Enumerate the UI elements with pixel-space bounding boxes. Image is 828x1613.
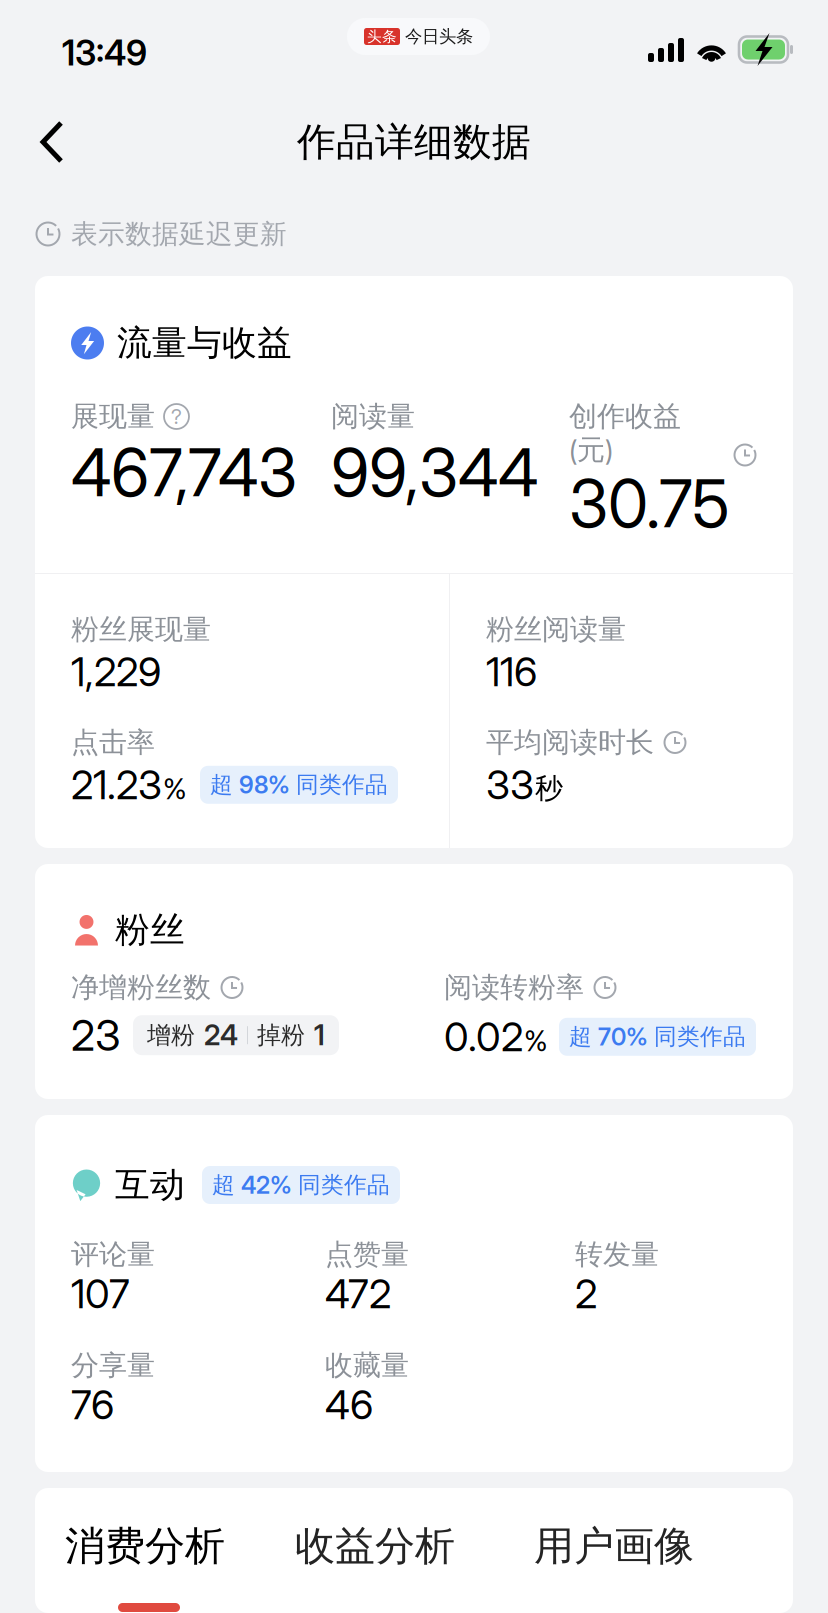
staticText: 70%: [598, 1022, 648, 1051]
staticText: 收益分析: [295, 1521, 455, 1571]
staticText: 24: [204, 1018, 238, 1052]
staticText: 掉粉: [257, 1020, 305, 1050]
staticText: ?: [171, 404, 182, 429]
staticText: 46: [325, 1381, 373, 1429]
staticText: 用户画像: [534, 1521, 694, 1571]
staticText: 30.75: [569, 464, 730, 543]
staticText: 互动: [115, 1163, 185, 1207]
staticText: 净增粉丝数: [71, 970, 211, 1005]
staticText: 秒: [535, 771, 563, 806]
staticText: 33: [486, 761, 534, 809]
staticText: 超: [569, 1022, 592, 1051]
button[interactable]: 消费分析: [65, 1521, 295, 1612]
staticText: %: [524, 1024, 548, 1058]
staticText: 流量与收益: [117, 321, 292, 365]
staticText: 同类作品: [654, 1022, 746, 1051]
staticText: 2: [575, 1270, 597, 1318]
staticText: 粉丝阅读量: [486, 612, 626, 647]
staticText: 超: [210, 770, 233, 799]
staticText: 23: [71, 1009, 121, 1061]
staticText: 1,229: [71, 648, 161, 696]
staticText: 消费分析: [65, 1521, 225, 1571]
button[interactable]: 用户画像: [534, 1521, 714, 1612]
staticText: 同类作品: [298, 1171, 390, 1199]
staticText: 13:49: [62, 32, 147, 74]
staticText: 收藏量: [325, 1348, 409, 1383]
staticText: 99,344: [331, 433, 538, 512]
staticText: 创作收益: [569, 399, 681, 434]
staticText: 展现量: [71, 399, 155, 434]
staticText: 表示数据延迟更新: [71, 217, 287, 251]
staticText: 阅读量: [331, 399, 415, 434]
staticText: 107: [71, 1270, 130, 1318]
staticText: 116: [486, 648, 537, 696]
staticText: 今日头条: [405, 26, 473, 47]
staticText: 粉丝: [115, 908, 185, 952]
button[interactable]: 返回: [18, 103, 86, 181]
staticText: 分享量: [71, 1348, 155, 1383]
staticText: 1: [314, 1018, 325, 1052]
staticText: 阅读转粉率: [444, 970, 584, 1005]
staticText: 21.23: [71, 761, 162, 809]
staticText: 点赞量: [325, 1237, 409, 1272]
staticText: 转发量: [575, 1237, 659, 1272]
staticText: 作品详细数据: [297, 118, 531, 166]
staticText: %: [163, 772, 187, 806]
staticText: 同类作品: [296, 770, 388, 799]
staticText: 评论量: [71, 1237, 155, 1272]
staticText: 粉丝展现量: [71, 612, 211, 647]
staticText: 0.02: [444, 1013, 523, 1061]
button[interactable]: 收益分析: [295, 1521, 534, 1612]
staticText: (元): [569, 432, 613, 468]
staticText: 增粉: [147, 1020, 195, 1050]
staticText: 超: [212, 1171, 235, 1199]
staticText: 472: [325, 1270, 391, 1318]
staticText: 467,743: [71, 433, 297, 512]
staticText: 76: [71, 1381, 114, 1429]
staticText: 98%: [239, 770, 290, 799]
staticText: 42%: [241, 1170, 292, 1199]
staticText: 头条: [367, 27, 397, 46]
staticText: 平均阅读时长: [486, 725, 654, 760]
staticText: 点击率: [71, 725, 155, 760]
